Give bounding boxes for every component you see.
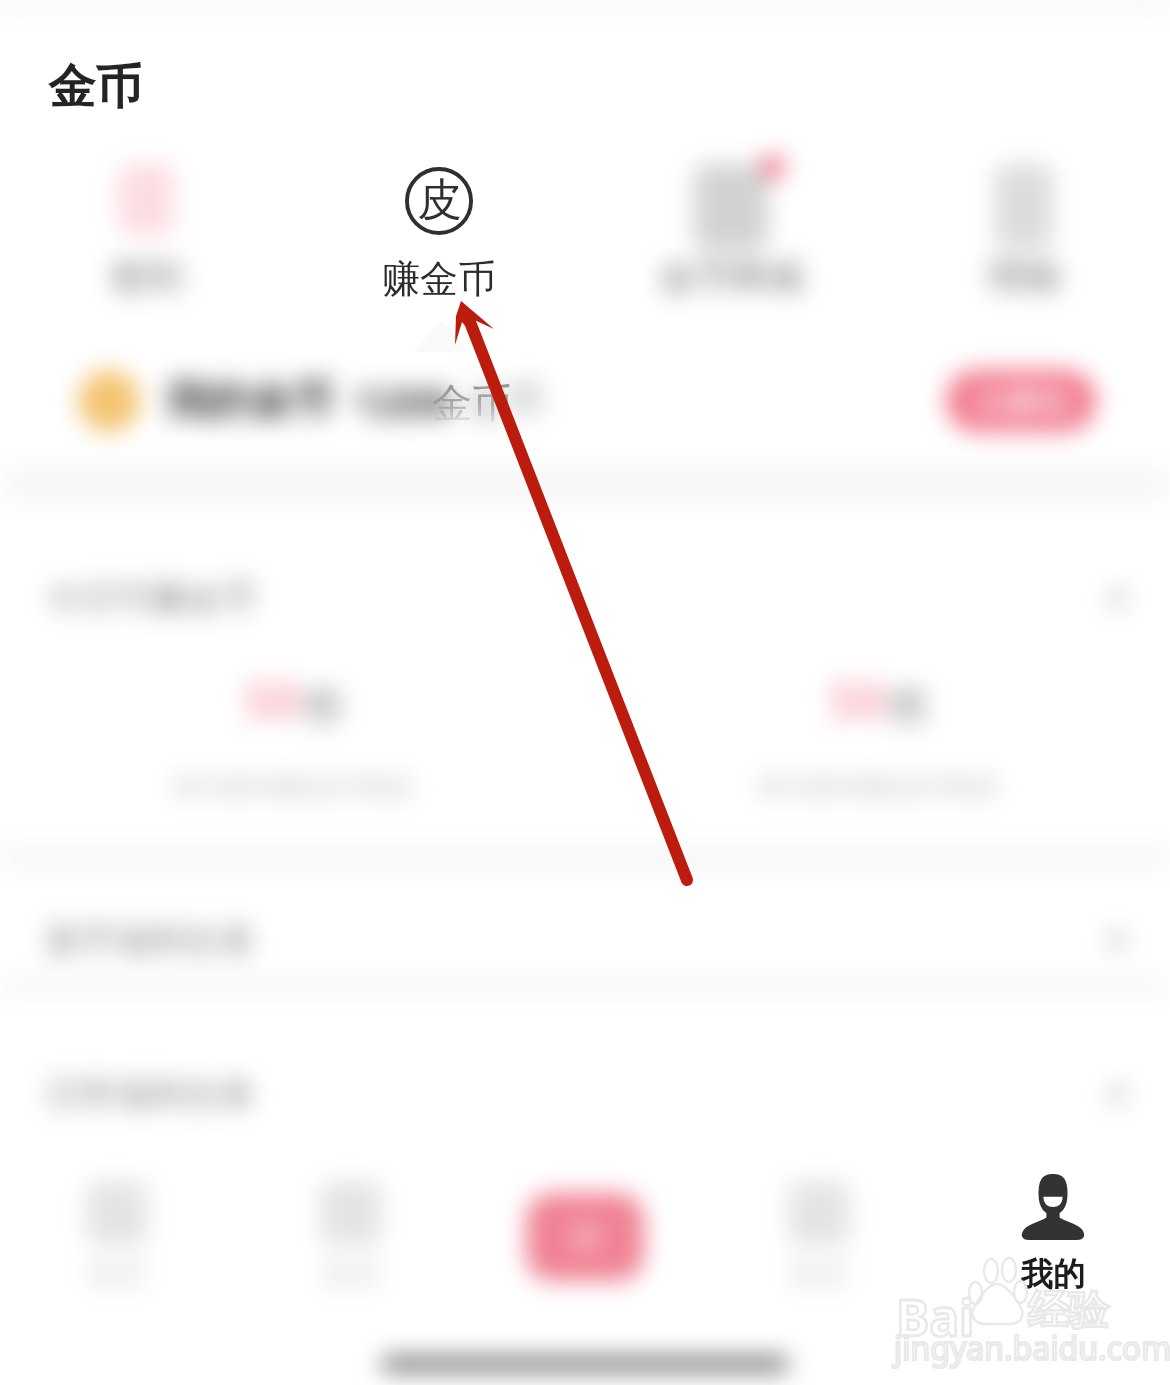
- staticText: 1208: [354, 373, 451, 430]
- button[interactable]: 赚金币: [292, 164, 584, 299]
- staticText: jingyan.baidu.com: [894, 1326, 1170, 1370]
- staticText: 皮: [417, 172, 462, 229]
- button[interactable]: 赚金币: [349, 167, 529, 303]
- button[interactable]: 签到: [0, 164, 292, 299]
- button[interactable]: 我的: [958, 1174, 1148, 1294]
- staticText: 50: [829, 666, 887, 734]
- staticText: 签到: [110, 254, 182, 299]
- staticText: 币: [302, 684, 342, 734]
- staticText: 经验: [1028, 1285, 1108, 1335]
- staticText: 金币商城: [659, 254, 803, 299]
- staticText: 我的: [1021, 1254, 1085, 1294]
- button[interactable]: 首页: [702, 1181, 936, 1293]
- staticText: Bai: [896, 1283, 975, 1351]
- staticText: 新手福利任务: [46, 918, 256, 962]
- staticText: 金币: [48, 58, 142, 117]
- staticText: 赚金币: [384, 254, 492, 299]
- button[interactable]: 金币商城: [584, 164, 877, 299]
- button[interactable]: 50: [0, 654, 585, 802]
- button[interactable]: [468, 1193, 702, 1281]
- button[interactable]: 首页: [234, 1181, 468, 1293]
- other: 赚金币: [405, 167, 473, 235]
- button[interactable]: 50: [585, 654, 1170, 802]
- staticText: 金币: [465, 376, 545, 426]
- staticText: 币: [887, 684, 927, 734]
- button[interactable]: 首页: [0, 1181, 234, 1293]
- other: 我的: [1020, 1174, 1086, 1240]
- staticText: 金币: [432, 378, 512, 428]
- staticText: 50: [244, 666, 302, 734]
- staticText: 日常福利任务: [46, 1072, 256, 1116]
- staticText: 去赚钱: [973, 381, 1069, 421]
- staticText: 赚金币: [382, 255, 496, 303]
- button[interactable]: 明细: [877, 164, 1170, 299]
- staticText: 我的金币: [166, 375, 334, 428]
- staticText: 今日可赚金币: [46, 576, 256, 620]
- staticText: 明细: [988, 254, 1060, 299]
